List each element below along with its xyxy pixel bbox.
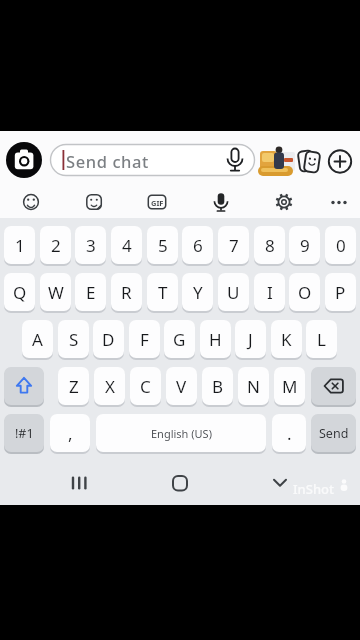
staticText: D — [102, 328, 115, 351]
button[interactable]: , — [50, 414, 90, 452]
staticText: 9 — [300, 234, 310, 257]
button[interactable]: G — [164, 320, 195, 358]
button[interactable]: . — [272, 414, 306, 452]
staticText: Z — [69, 375, 79, 398]
staticText: English (US) — [151, 426, 212, 441]
button[interactable] — [260, 470, 300, 496]
button[interactable]: R — [111, 273, 142, 311]
staticText: GIF — [151, 198, 164, 208]
staticText: V — [176, 375, 187, 398]
button[interactable] — [4, 367, 44, 405]
staticText: 5 — [158, 234, 168, 257]
button[interactable]: O — [289, 273, 320, 311]
staticText: InShot — [293, 480, 334, 498]
button[interactable]: K — [271, 320, 302, 358]
staticText: 4 — [122, 234, 132, 257]
staticText: 1 — [15, 234, 25, 257]
button[interactable]: 0 — [325, 226, 356, 264]
staticText: I — [267, 281, 273, 304]
button[interactable]: Send — [311, 414, 356, 452]
button[interactable]: X — [94, 367, 125, 405]
staticText: 7 — [229, 234, 239, 257]
staticText: B — [212, 375, 224, 398]
button[interactable] — [311, 367, 356, 405]
button[interactable]: F — [129, 320, 160, 358]
button[interactable]: 9 — [289, 226, 320, 264]
button[interactable]: 2 — [40, 226, 71, 264]
button[interactable]: E — [75, 273, 106, 311]
staticText: U — [227, 281, 240, 304]
staticText: O — [298, 281, 312, 304]
button[interactable]: 6 — [182, 226, 213, 264]
button[interactable] — [50, 144, 255, 176]
button[interactable]: 3 — [75, 226, 106, 264]
staticText: 0 — [336, 234, 346, 257]
staticText: X — [105, 375, 115, 398]
staticText: F — [140, 328, 149, 351]
staticText: Q — [13, 281, 27, 304]
staticText: K — [281, 328, 292, 351]
staticText: 3 — [86, 234, 96, 257]
button[interactable] — [326, 148, 354, 175]
button[interactable]: 8 — [254, 226, 285, 264]
button[interactable] — [324, 188, 354, 216]
staticText: , — [68, 422, 73, 445]
button[interactable]: H — [200, 320, 231, 358]
button[interactable]: Z — [58, 367, 89, 405]
staticText: M — [282, 375, 298, 398]
button[interactable]: S — [58, 320, 89, 358]
staticText: . — [287, 422, 292, 445]
staticText: Send — [319, 425, 349, 442]
staticText: 8 — [265, 234, 275, 257]
staticText: N — [247, 375, 260, 398]
staticText: L — [317, 328, 326, 351]
button[interactable] — [142, 188, 172, 216]
staticText: G — [173, 328, 186, 351]
button[interactable]: D — [93, 320, 124, 358]
button[interactable]: Q — [4, 273, 35, 311]
button[interactable]: N — [238, 367, 269, 405]
button[interactable]: T — [147, 273, 178, 311]
staticText: Y — [193, 281, 203, 304]
staticText: 6 — [193, 234, 203, 257]
button[interactable]: V — [166, 367, 197, 405]
button[interactable]: English (US) — [96, 414, 266, 452]
button[interactable] — [16, 188, 46, 216]
button[interactable] — [255, 145, 295, 177]
button[interactable]: W — [40, 273, 71, 311]
staticText: T — [158, 281, 168, 304]
button[interactable]: 1 — [4, 226, 35, 264]
button[interactable]: C — [130, 367, 161, 405]
button[interactable]: Y — [182, 273, 213, 311]
button[interactable]: 4 — [111, 226, 142, 264]
staticText: Send chat — [66, 150, 150, 172]
staticText: P — [335, 281, 346, 304]
button[interactable] — [6, 142, 42, 178]
staticText: A — [32, 328, 43, 351]
button[interactable]: 7 — [218, 226, 249, 264]
button[interactable]: B — [202, 367, 233, 405]
button[interactable]: L — [306, 320, 337, 358]
button[interactable]: P — [325, 273, 356, 311]
button[interactable]: A — [22, 320, 53, 358]
button[interactable]: 5 — [147, 226, 178, 264]
button[interactable]: J — [235, 320, 266, 358]
button[interactable]: M — [274, 367, 305, 405]
button[interactable] — [206, 188, 236, 216]
button[interactable]: I — [254, 273, 285, 311]
staticText: E — [86, 281, 96, 304]
button[interactable]: !#1 — [4, 414, 44, 452]
button[interactable] — [296, 148, 324, 175]
staticText: 2 — [51, 234, 61, 257]
staticText: W — [48, 281, 64, 304]
button[interactable] — [160, 470, 200, 496]
staticText: !#1 — [15, 425, 34, 442]
staticText: J — [248, 328, 253, 351]
button[interactable] — [269, 188, 299, 216]
staticText: C — [140, 375, 151, 398]
staticText: R — [121, 281, 132, 304]
staticText: S — [69, 328, 79, 351]
button[interactable] — [79, 188, 109, 216]
button[interactable]: U — [218, 273, 249, 311]
button[interactable] — [60, 470, 100, 496]
